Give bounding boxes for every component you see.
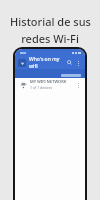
staticText: MY WIFI NETWORK (30, 79, 67, 84)
button[interactable] (61, 74, 81, 77)
button[interactable]: Search (65, 58, 74, 67)
button[interactable]: More options (74, 59, 82, 67)
staticText: Who's on my wifi (29, 56, 65, 69)
button[interactable]: App icon (18, 59, 26, 67)
staticText: redes Wi-Fi (21, 31, 79, 46)
staticText: 1 of 1 devices (30, 85, 53, 90)
staticText: Historial de sus (10, 14, 91, 29)
button[interactable]: MY WIFI NETWORK (15, 78, 85, 91)
button[interactable]: Row options (74, 81, 82, 89)
